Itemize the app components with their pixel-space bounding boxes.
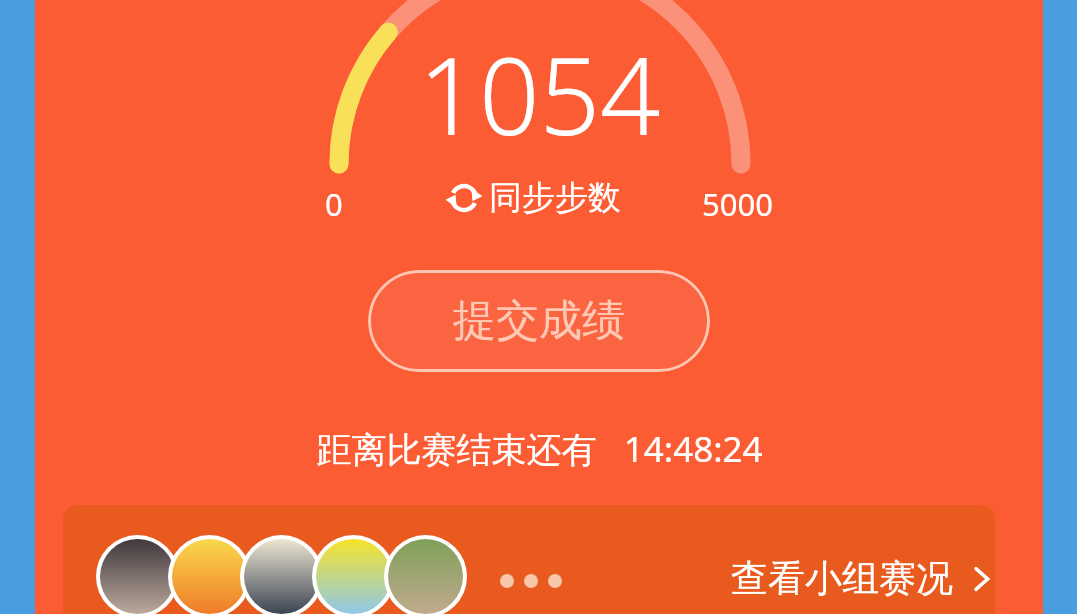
staticText: 5000 [702,183,773,225]
button[interactable]: Group member avatar [240,535,323,614]
button[interactable]: Group member avatar [312,535,395,614]
button[interactable]: Group member avatar [384,535,467,614]
button[interactable]: 提交成绩 [368,270,710,372]
staticText: 同步步数 [489,177,621,219]
button[interactable]: Group member avatar [63,505,995,614]
staticText: 距离比赛结束还有 14:48:24 [316,425,763,473]
button[interactable]: Group member avatar [168,535,251,614]
staticText: 提交成绩 [453,294,625,348]
button[interactable]: Sync steps [444,177,621,219]
button[interactable]: 查看小组赛况 [731,555,995,602]
staticText: 1054 [418,22,661,166]
staticText: 查看小组赛况 [731,555,953,602]
staticText: 0 [325,183,343,225]
button[interactable]: Group member avatar [96,535,179,614]
other: Sync steps [444,178,484,218]
